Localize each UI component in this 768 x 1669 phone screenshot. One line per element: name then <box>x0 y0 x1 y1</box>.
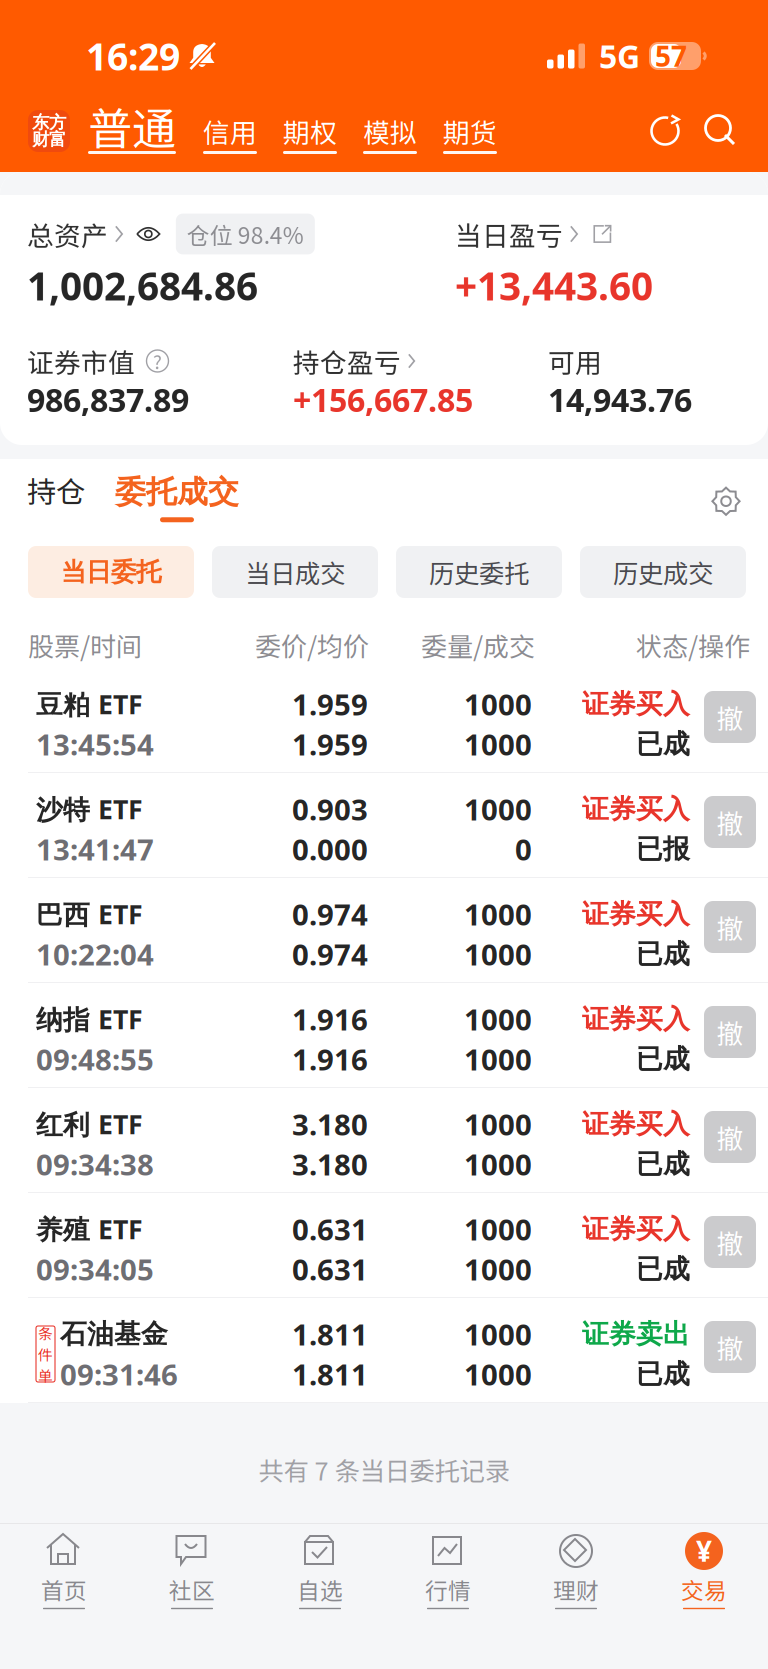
staticText: 沙特 ETF <box>36 791 143 827</box>
button[interactable]: Settings <box>711 486 741 522</box>
button[interactable]: Cancel order <box>704 1321 756 1373</box>
button[interactable]: Cancel order <box>704 796 756 848</box>
button[interactable]: 行情 <box>384 1531 512 1609</box>
staticText: 历史成交 <box>613 554 713 590</box>
button[interactable]: 巴西 ETF <box>0 878 768 983</box>
button[interactable]: 社区 <box>128 1531 256 1609</box>
staticText: 委量/成交 <box>421 626 535 664</box>
button[interactable]: Cancel order <box>704 1006 756 1058</box>
staticText: 5G <box>599 34 640 78</box>
staticText: 1.811 <box>292 1354 368 1394</box>
button[interactable]: 豆粕 ETF <box>0 668 768 773</box>
staticText: 09:48:55 <box>36 1039 154 1079</box>
staticText: 1000 <box>464 1104 532 1144</box>
button[interactable]: Cancel order <box>704 1111 756 1163</box>
staticText: 3.180 <box>292 1104 368 1144</box>
staticText: 历史委托 <box>429 554 529 590</box>
button[interactable]: 红利 ETF <box>0 1088 768 1193</box>
button[interactable]: 信用 <box>201 96 259 154</box>
button[interactable]: 持仓 <box>27 469 85 522</box>
button[interactable]: 当日委托 <box>28 546 194 598</box>
staticText: 总资产 <box>27 215 108 253</box>
staticText: 13:41:47 <box>36 829 154 869</box>
button[interactable]: Cancel order <box>704 691 756 743</box>
staticText: 1000 <box>464 999 532 1039</box>
staticText: 纳指 ETF <box>36 1001 143 1037</box>
staticText: +156,667.85 <box>293 378 473 421</box>
button[interactable]: 委托成交 <box>115 473 239 522</box>
button[interactable]: Cancel order <box>704 901 756 953</box>
staticText: 可用 <box>548 342 602 380</box>
staticText: 986,837.89 <box>27 378 189 421</box>
staticText: 证券买入 <box>582 792 690 826</box>
staticText: 模拟 <box>363 112 417 150</box>
staticText: 1000 <box>464 894 532 934</box>
staticText: 交易 <box>681 1573 727 1606</box>
button[interactable]: 历史成交 <box>580 546 746 598</box>
staticText: 东方 <box>32 112 66 133</box>
staticText: 豆粕 ETF <box>36 686 143 722</box>
staticText: 当日成交 <box>245 554 345 590</box>
staticText: 当日盈亏 <box>455 215 563 253</box>
staticText: ? <box>153 347 162 374</box>
staticText: 已成 <box>636 1357 690 1391</box>
button[interactable]: 纳指 ETF <box>0 983 768 1088</box>
staticText: 1.811 <box>292 1314 368 1354</box>
staticText: 首页 <box>41 1573 87 1606</box>
staticText: 共有 7 条当日委托记录 <box>258 1451 509 1488</box>
button[interactable]: 期权 <box>281 96 339 154</box>
button[interactable]: ¥ <box>640 1531 768 1609</box>
button[interactable]: 条 <box>0 1298 768 1403</box>
button[interactable]: Refresh <box>649 115 682 148</box>
staticText: 撤 <box>716 803 743 841</box>
staticText: 14,943.76 <box>548 378 692 421</box>
button[interactable]: 普通 <box>86 96 178 154</box>
staticText: 已成 <box>636 1252 690 1286</box>
staticText: 证券买入 <box>582 687 690 721</box>
staticText: 条 <box>38 1322 53 1343</box>
staticText: 1000 <box>464 1209 532 1249</box>
staticText: +13,443.60 <box>455 259 653 312</box>
button[interactable]: 沙特 ETF <box>0 773 768 878</box>
staticText: 1.959 <box>292 684 368 724</box>
staticText: 1.916 <box>292 1039 368 1079</box>
staticText: 3.180 <box>292 1144 368 1184</box>
button[interactable]: 历史委托 <box>396 546 562 598</box>
staticText: 撤 <box>716 698 743 736</box>
button[interactable]: 自选 <box>256 1531 384 1609</box>
staticText: 0.000 <box>292 829 368 869</box>
staticText: ¥ <box>696 1532 712 1570</box>
staticText: 石油基金 <box>60 1317 168 1351</box>
staticText: 证券买入 <box>582 1107 690 1141</box>
staticText: 普通 <box>88 94 176 158</box>
staticText: 已成 <box>636 937 690 971</box>
staticText: 证券卖出 <box>582 1317 690 1351</box>
staticText: 仓位 98.4% <box>187 218 304 250</box>
staticText: 0 <box>515 829 532 869</box>
staticText: 撤 <box>716 908 743 946</box>
staticText: 1.916 <box>292 999 368 1039</box>
staticText: 养殖 ETF <box>36 1211 143 1247</box>
staticText: 09:34:05 <box>36 1249 154 1289</box>
staticText: 1000 <box>464 1314 532 1354</box>
staticText: 财富 <box>32 129 66 150</box>
staticText: 0.974 <box>292 934 368 974</box>
button[interactable]: East Money <box>28 110 70 152</box>
staticText: 委托成交 <box>115 473 239 511</box>
button[interactable]: 理财 <box>512 1531 640 1609</box>
button[interactable]: Cancel order <box>704 1216 756 1268</box>
button[interactable]: 首页 <box>0 1531 128 1609</box>
staticText: 证券买入 <box>582 1002 690 1036</box>
staticText: 已成 <box>636 1147 690 1181</box>
staticText: 撤 <box>716 1013 743 1051</box>
button[interactable]: 期货 <box>441 96 499 154</box>
button[interactable]: 养殖 ETF <box>0 1193 768 1298</box>
button[interactable]: 当日成交 <box>212 546 378 598</box>
staticText: 10:22:04 <box>36 934 154 974</box>
staticText: 行情 <box>425 1573 471 1606</box>
button[interactable]: 模拟 <box>361 96 419 154</box>
staticText: 信用 <box>203 112 257 150</box>
button[interactable]: Search <box>704 114 738 148</box>
staticText: 撤 <box>716 1118 743 1156</box>
staticText: 自选 <box>297 1573 343 1606</box>
